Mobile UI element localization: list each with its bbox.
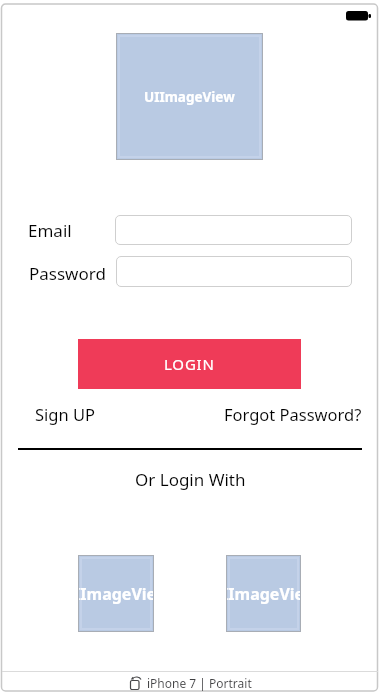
button[interactable] xyxy=(116,256,352,287)
staticText: UIImageView xyxy=(62,583,170,605)
staticText: Password xyxy=(29,262,106,285)
button[interactable]: UIImageView xyxy=(78,555,154,632)
button[interactable] xyxy=(115,215,352,245)
staticText: Email xyxy=(28,219,72,242)
staticText: Or Login With xyxy=(135,468,246,491)
staticText: UIImageView xyxy=(144,88,235,106)
staticText: iPhone 7 | Portrait xyxy=(147,675,252,691)
staticText: UIImageView xyxy=(210,583,318,605)
button[interactable]: Forgot Password? xyxy=(224,403,362,425)
button[interactable]: UIImageView xyxy=(226,555,301,632)
button[interactable]: Sign UP xyxy=(35,403,95,425)
button[interactable]: LOGIN xyxy=(78,339,301,389)
staticText: LOGIN xyxy=(164,354,215,374)
